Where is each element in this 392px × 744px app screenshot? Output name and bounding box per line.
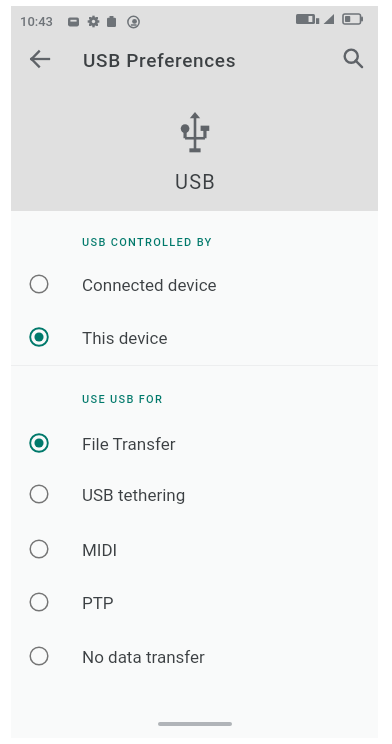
button[interactable]: MIDI [11, 522, 378, 575]
staticText: No data transfer [82, 647, 205, 667]
staticText: This device [82, 328, 168, 348]
staticText: Connected device [82, 275, 217, 295]
button[interactable]: Connected device [11, 257, 378, 310]
staticText: USB tethering [82, 485, 186, 505]
button[interactable]: PTP [11, 575, 378, 628]
staticText: USB CONTROLLED BY [82, 236, 213, 249]
staticText: USE USB FOR [82, 393, 164, 406]
button[interactable]: This device [11, 310, 378, 363]
staticText: PTP [82, 593, 114, 613]
staticText: USB Preferences [83, 49, 237, 71]
button[interactable]: No data transfer [11, 629, 378, 682]
staticText: MIDI [82, 540, 118, 560]
button[interactable]: USB tethering [11, 467, 378, 520]
button[interactable]: Back [15, 35, 63, 83]
staticText: File Transfer [82, 434, 176, 454]
staticText: USB [175, 170, 216, 193]
button[interactable]: File Transfer [11, 416, 378, 469]
button[interactable]: Search [329, 34, 377, 82]
staticText: 10:43 [20, 14, 54, 29]
